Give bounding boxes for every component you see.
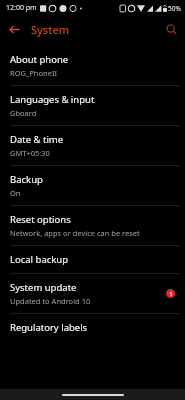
- button[interactable]: System update: [0, 274, 185, 313]
- staticText: System update: [10, 281, 77, 294]
- staticText: System: [31, 22, 70, 37]
- button[interactable]: Regulatory labels: [0, 314, 185, 341]
- button[interactable]: Back: [2, 17, 26, 41]
- button[interactable]: Local backup: [0, 246, 185, 273]
- staticText: Network, apps or device can be reset: [10, 228, 140, 238]
- button[interactable]: Reset options: [0, 206, 185, 245]
- staticText: Local backup: [10, 253, 69, 266]
- staticText: 1: [169, 290, 173, 298]
- staticText: On: [10, 188, 21, 198]
- staticText: Reset options: [10, 213, 71, 226]
- staticText: GMT+05:30: [10, 148, 50, 158]
- staticText: About phone: [10, 53, 69, 66]
- staticText: Gboard: [10, 108, 37, 118]
- staticText: Updated to Android 10: [10, 296, 91, 306]
- button[interactable]: Languages & input: [0, 86, 185, 125]
- staticText: Date & time: [10, 133, 64, 146]
- button[interactable]: Date & time: [0, 126, 185, 165]
- staticText: 12:00 pm: [6, 3, 37, 13]
- staticText: ROG_PhoneII: [10, 68, 57, 78]
- staticText: 50%: [168, 4, 181, 13]
- button[interactable]: About phone: [0, 46, 185, 85]
- staticText: Languages & input: [10, 93, 95, 106]
- staticText: Backup: [10, 173, 43, 186]
- button[interactable]: Backup: [0, 166, 185, 205]
- button[interactable]: Search: [160, 18, 182, 40]
- staticText: Regulatory labels: [10, 321, 88, 334]
